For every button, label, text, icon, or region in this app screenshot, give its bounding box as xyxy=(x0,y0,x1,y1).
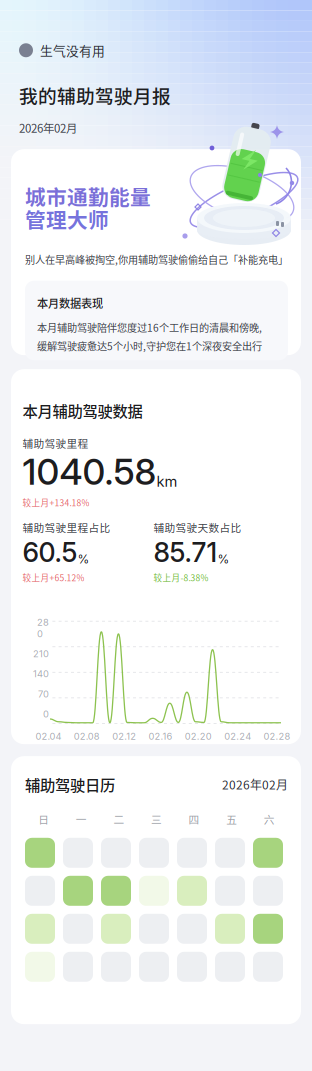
staticText: 辅助驾驶里程占比 xyxy=(22,520,110,535)
staticText: 五 xyxy=(226,811,237,827)
staticText: 辅助驾驶日历 xyxy=(25,773,115,795)
staticText: 85.71 xyxy=(153,536,217,568)
staticText: 四 xyxy=(189,811,200,827)
staticText: 本月辅助驾驶陪伴您度过16个工作日的清晨和傍晚, xyxy=(37,320,262,335)
staticText: 一 xyxy=(76,811,87,827)
staticText: 本月数据表现 xyxy=(37,295,103,311)
staticText: 别人在早高峰被掏空,你用辅助驾驶偷偷给自己「补能充电」 xyxy=(25,252,288,267)
staticText: 辅助驾驶里程 xyxy=(22,435,88,451)
staticText: 六 xyxy=(264,811,275,827)
staticText: 02.12 xyxy=(112,731,136,742)
staticText: 02.24 xyxy=(224,731,251,742)
staticText: 280 xyxy=(37,617,49,639)
staticText: 较上月+65.12% xyxy=(22,571,84,584)
staticText: 日 xyxy=(38,811,49,827)
staticText: 较上月+134.18% xyxy=(22,496,89,509)
staticText: 本月辅助驾驶数据 xyxy=(22,399,142,421)
staticText: 0 xyxy=(43,708,49,720)
staticText: 城市通勤能量 xyxy=(25,181,151,211)
staticText: 较上月-8.38% xyxy=(153,571,208,584)
staticText: 140 xyxy=(33,668,49,680)
staticText: 02.04 xyxy=(35,731,61,742)
staticText: 70 xyxy=(38,688,49,700)
staticText: 我的辅助驾驶月报 xyxy=(19,81,171,108)
staticText: 1040.58 xyxy=(22,450,156,493)
staticText: 2026年02月 xyxy=(222,776,288,793)
staticText: 辅助驾驶天数占比 xyxy=(153,520,241,535)
staticText: 三 xyxy=(151,811,162,827)
staticText: 210 xyxy=(33,648,49,659)
staticText: 02.08 xyxy=(74,731,100,742)
staticText: 2026年02月 xyxy=(19,120,77,136)
staticText: 02.20 xyxy=(185,731,212,742)
staticText: % xyxy=(217,552,229,566)
staticText: 生气没有用 xyxy=(40,41,105,59)
staticText: 二 xyxy=(113,811,124,827)
staticText: 02.28 xyxy=(263,731,290,742)
staticText: km xyxy=(156,473,177,490)
staticText: % xyxy=(77,552,89,566)
staticText: 管理大师 xyxy=(25,204,109,234)
staticText: 60.5 xyxy=(22,536,77,568)
staticText: 缓解驾驶疲惫达5个小时,守护您在1个深夜安全出行 xyxy=(37,339,262,353)
staticText: 02.16 xyxy=(148,731,172,742)
